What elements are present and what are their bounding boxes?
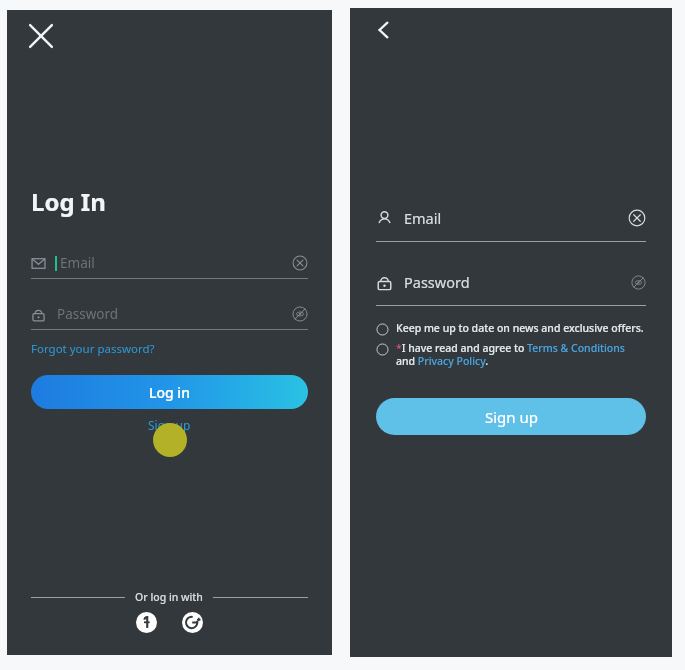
button[interactable]: Log in with Google (182, 612, 203, 633)
button[interactable]: Clear email (292, 255, 308, 271)
button[interactable]: Log in (31, 375, 308, 409)
staticText: Keep me up to date on news and exclusive… (396, 321, 646, 335)
button[interactable]: Clear email (628, 209, 646, 227)
button[interactable]: Email (376, 203, 646, 233)
button[interactable]: Sign up (144, 415, 195, 435)
staticText: Email (404, 208, 628, 228)
button[interactable]: Back (370, 16, 398, 44)
staticText: Sign up (485, 407, 538, 427)
button[interactable]: Keep me up to date on news and exclusive… (376, 321, 646, 336)
staticText: Or log in with (135, 590, 203, 604)
staticText: Log In (31, 185, 106, 218)
button[interactable]: Forgot your password? (31, 340, 155, 358)
button[interactable]: Close (25, 20, 57, 52)
button[interactable]: Email (31, 248, 308, 278)
button[interactable]: Password (376, 267, 646, 297)
staticText: Password (404, 272, 631, 292)
button[interactable]: *I have read and agree to Terms & Condit… (376, 341, 646, 368)
staticText: *I have read and agree to Terms & Condit… (396, 341, 646, 368)
button[interactable]: Show password (292, 306, 308, 322)
button[interactable]: Password (31, 299, 308, 329)
button[interactable]: Show password (631, 275, 646, 290)
button[interactable]: Log in with Facebook (136, 612, 157, 633)
staticText: Log in (149, 383, 190, 402)
staticText: Password (57, 305, 292, 323)
staticText: Email (60, 254, 292, 272)
button[interactable]: Sign up (376, 398, 646, 435)
